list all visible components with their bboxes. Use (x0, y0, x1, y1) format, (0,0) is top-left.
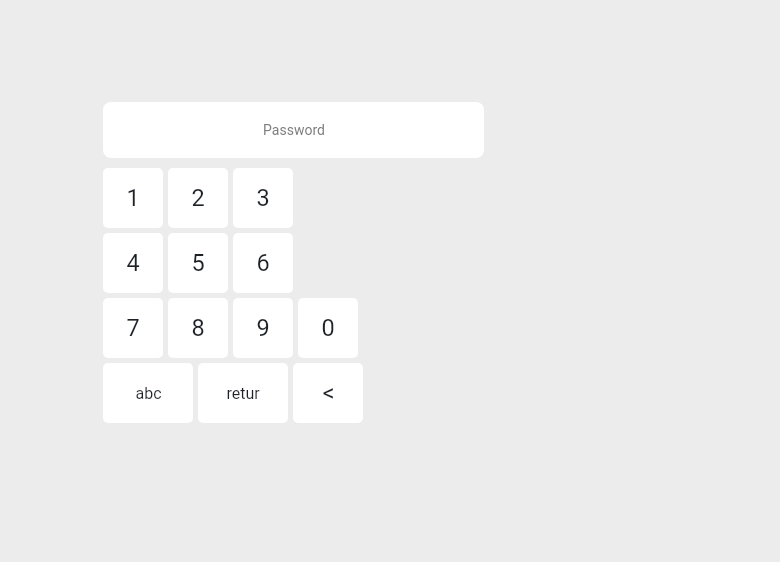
staticText: 6 (256, 249, 270, 277)
button[interactable]: 4 (103, 233, 163, 293)
staticText: abc (135, 384, 162, 403)
staticText: 4 (126, 249, 140, 277)
button[interactable]: retur (198, 363, 288, 423)
button[interactable]: 2 (168, 168, 228, 228)
button[interactable]: 5 (168, 233, 228, 293)
staticText: 2 (191, 184, 205, 212)
button[interactable]: 1 (103, 168, 163, 228)
button[interactable]: 3 (233, 168, 293, 228)
button[interactable]: 7 (103, 298, 163, 358)
button[interactable]: Password (103, 102, 484, 158)
staticText: 9 (256, 314, 270, 342)
staticText: retur (226, 384, 260, 403)
button[interactable]: 8 (168, 298, 228, 358)
staticText: 8 (191, 314, 205, 342)
button[interactable]: abc (103, 363, 193, 423)
staticText: 7 (126, 314, 140, 342)
button[interactable]: 6 (233, 233, 293, 293)
button[interactable]: Backspace (293, 363, 363, 423)
button[interactable]: 9 (233, 298, 293, 358)
staticText: 0 (321, 314, 335, 342)
staticText: 1 (126, 184, 140, 212)
staticText: 5 (191, 249, 205, 277)
staticText: < (322, 379, 335, 407)
staticText: 3 (256, 184, 270, 212)
staticText: Password (263, 122, 325, 138)
button[interactable]: 0 (298, 298, 358, 358)
